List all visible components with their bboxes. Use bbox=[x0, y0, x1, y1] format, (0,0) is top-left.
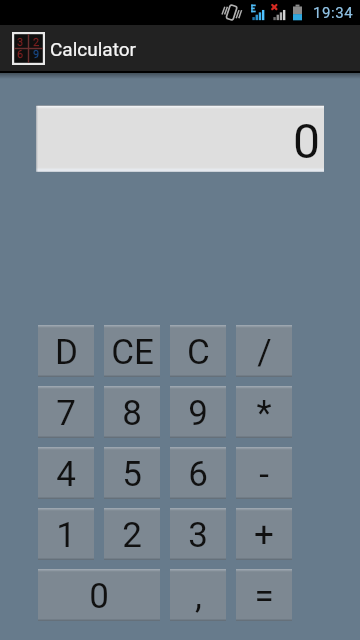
button[interactable]: 9 bbox=[170, 386, 226, 438]
staticText: 9 bbox=[33, 48, 40, 61]
staticText: 2 bbox=[122, 515, 142, 556]
staticText: 2 bbox=[33, 36, 40, 49]
button[interactable]: 1 bbox=[38, 508, 94, 560]
staticText: 3 bbox=[188, 515, 208, 556]
staticText: 1 bbox=[56, 515, 76, 556]
staticText: , bbox=[195, 576, 202, 617]
button[interactable]: CE bbox=[104, 325, 160, 377]
staticText: CE bbox=[111, 332, 154, 373]
staticText: 9 bbox=[188, 393, 208, 434]
staticText: C bbox=[187, 332, 210, 373]
button[interactable]: C bbox=[170, 325, 226, 377]
staticText: 7 bbox=[56, 393, 76, 434]
button[interactable]: Calculator app icon bbox=[0, 25, 360, 73]
button[interactable]: 0 bbox=[36, 105, 324, 172]
staticText: 6 bbox=[188, 454, 208, 495]
staticText: = bbox=[254, 576, 274, 617]
staticText: 0 bbox=[89, 576, 109, 617]
staticText: 4 bbox=[56, 454, 76, 495]
staticText: 0 bbox=[293, 113, 320, 169]
staticText: 8 bbox=[122, 393, 142, 434]
button[interactable]: 0 bbox=[38, 569, 160, 621]
staticText: D bbox=[55, 332, 78, 373]
button[interactable]: 2 bbox=[104, 508, 160, 560]
button[interactable]: - bbox=[236, 447, 292, 499]
button[interactable]: D bbox=[38, 325, 94, 377]
staticText: * bbox=[256, 393, 272, 434]
staticText: 5 bbox=[122, 454, 142, 495]
staticText: - bbox=[259, 454, 269, 495]
button[interactable]: , bbox=[170, 569, 226, 621]
staticText: 6 bbox=[17, 48, 24, 61]
other: Calculator app icon bbox=[12, 32, 45, 65]
button[interactable]: 4 bbox=[38, 447, 94, 499]
staticText: Calculator bbox=[50, 38, 137, 60]
button[interactable]: + bbox=[236, 508, 292, 560]
button[interactable]: = bbox=[236, 569, 292, 621]
button[interactable]: 3 bbox=[170, 508, 226, 560]
button[interactable]: 6 bbox=[170, 447, 226, 499]
button[interactable]: / bbox=[236, 325, 292, 377]
button[interactable]: 5 bbox=[104, 447, 160, 499]
staticText: + bbox=[254, 515, 274, 556]
staticText: 19:34 bbox=[313, 4, 354, 22]
button[interactable]: * bbox=[236, 386, 292, 438]
button[interactable]: 7 bbox=[38, 386, 94, 438]
staticText: / bbox=[257, 332, 272, 373]
staticText: 3 bbox=[17, 36, 24, 49]
button[interactable]: 8 bbox=[104, 386, 160, 438]
